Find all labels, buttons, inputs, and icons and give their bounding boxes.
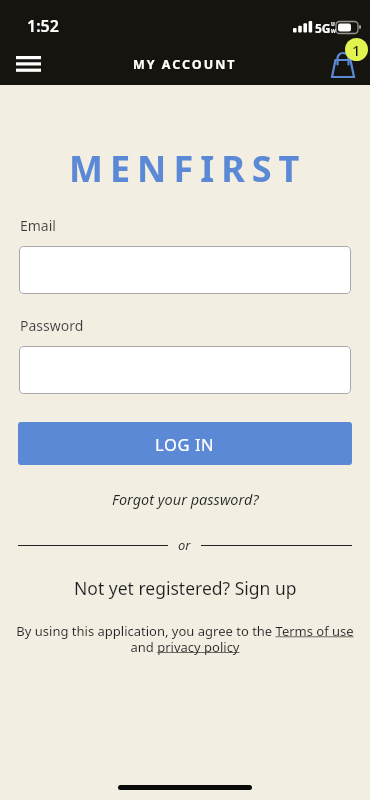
staticText: Not yet registered? Sign up (74, 576, 297, 600)
staticText: Email (20, 216, 56, 235)
button[interactable] (8, 49, 48, 79)
button[interactable]: LOG IN (18, 422, 352, 465)
staticText: Password (20, 316, 84, 335)
staticText: 1 (352, 40, 361, 60)
button[interactable]: By using this application, you agree to … (0, 622, 370, 655)
button[interactable]: Forgot your password? (112, 489, 259, 509)
staticText: By using this application, you agree to … (16, 622, 354, 655)
button[interactable] (19, 246, 351, 294)
button[interactable]: Not yet registered? Sign up (74, 576, 297, 600)
staticText: or (178, 536, 191, 554)
staticText: 5G (315, 20, 331, 36)
staticText: W (331, 28, 336, 35)
staticText: LOG IN (155, 433, 215, 455)
staticText: MY ACCOUNT (133, 56, 237, 73)
staticText: U (331, 21, 335, 28)
button[interactable]: 1 (326, 38, 370, 82)
staticText: Forgot your password? (112, 489, 259, 509)
button[interactable] (19, 346, 351, 394)
staticText: MENFIRST (69, 144, 307, 193)
staticText: 1:52 (27, 15, 59, 37)
